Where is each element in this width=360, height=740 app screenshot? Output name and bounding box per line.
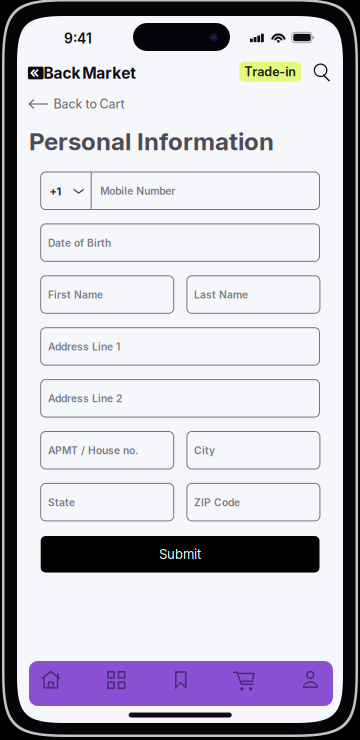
- staticText: Date of Birth: [48, 237, 111, 249]
- button[interactable]: Trade-in: [239, 62, 301, 82]
- button[interactable]: +1: [41, 172, 319, 209]
- staticText: City: [194, 444, 215, 457]
- staticText: State: [48, 496, 75, 509]
- staticText: APMT / House no.: [48, 444, 138, 457]
- staticText: Trade-in: [244, 64, 296, 79]
- button[interactable]: Address Line 1: [41, 328, 319, 365]
- button[interactable]: Last Name: [187, 276, 320, 313]
- button[interactable]: Cart: [211, 661, 272, 706]
- button[interactable]: First Name: [41, 276, 174, 313]
- staticText: First Name: [48, 289, 103, 301]
- staticText: 9:41: [64, 30, 92, 47]
- button[interactable]: Date of Birth: [41, 224, 319, 261]
- button[interactable]: Saved: [151, 661, 211, 706]
- button[interactable]: ZIP Code: [187, 483, 320, 521]
- staticText: Personal Information: [29, 127, 274, 156]
- button[interactable]: APMT / House no.: [41, 431, 174, 469]
- button[interactable]: State: [41, 483, 174, 521]
- staticText: Address Line 2: [48, 392, 122, 405]
- button[interactable]: Back: [28, 60, 148, 86]
- staticText: Back: [44, 64, 81, 82]
- staticText: Market: [82, 64, 136, 82]
- staticText: Back to Cart: [53, 96, 124, 111]
- button[interactable]: Categories: [90, 661, 151, 706]
- button[interactable]: Search: [309, 59, 335, 85]
- button[interactable]: City: [187, 431, 320, 469]
- staticText: Last Name: [194, 289, 248, 301]
- staticText: Address Line 1: [48, 340, 120, 353]
- staticText: Submit: [159, 546, 201, 562]
- staticText: Mobile Number: [100, 185, 175, 197]
- staticText: +1: [49, 185, 61, 198]
- staticText: ZIP Code: [194, 496, 240, 509]
- button[interactable]: Home: [29, 661, 90, 706]
- button[interactable]: Back to Cart: [28, 92, 158, 116]
- button[interactable]: Account: [272, 661, 333, 706]
- button[interactable]: Address Line 2: [41, 380, 319, 417]
- button[interactable]: Submit: [41, 536, 319, 572]
